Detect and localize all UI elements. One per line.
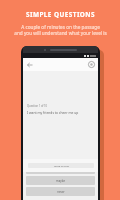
button[interactable]: never <box>26 187 95 196</box>
button[interactable]: Help <box>87 60 96 69</box>
button[interactable]: quite so true <box>23 159 98 172</box>
staticText: I want my friends to cheer me up <box>27 110 79 114</box>
staticText: Question 1 of 10 <box>27 104 48 108</box>
button[interactable]: maybe <box>26 176 95 185</box>
staticText: SIMPLE QUESTIONS <box>26 10 95 19</box>
button[interactable]: Back <box>25 60 34 69</box>
staticText: quite so true <box>54 164 69 167</box>
staticText: maybe <box>56 179 65 183</box>
staticText: never <box>57 190 65 194</box>
button[interactable]: sure <box>26 165 95 174</box>
staticText: A couple of minutes on the passage and y… <box>14 24 107 37</box>
